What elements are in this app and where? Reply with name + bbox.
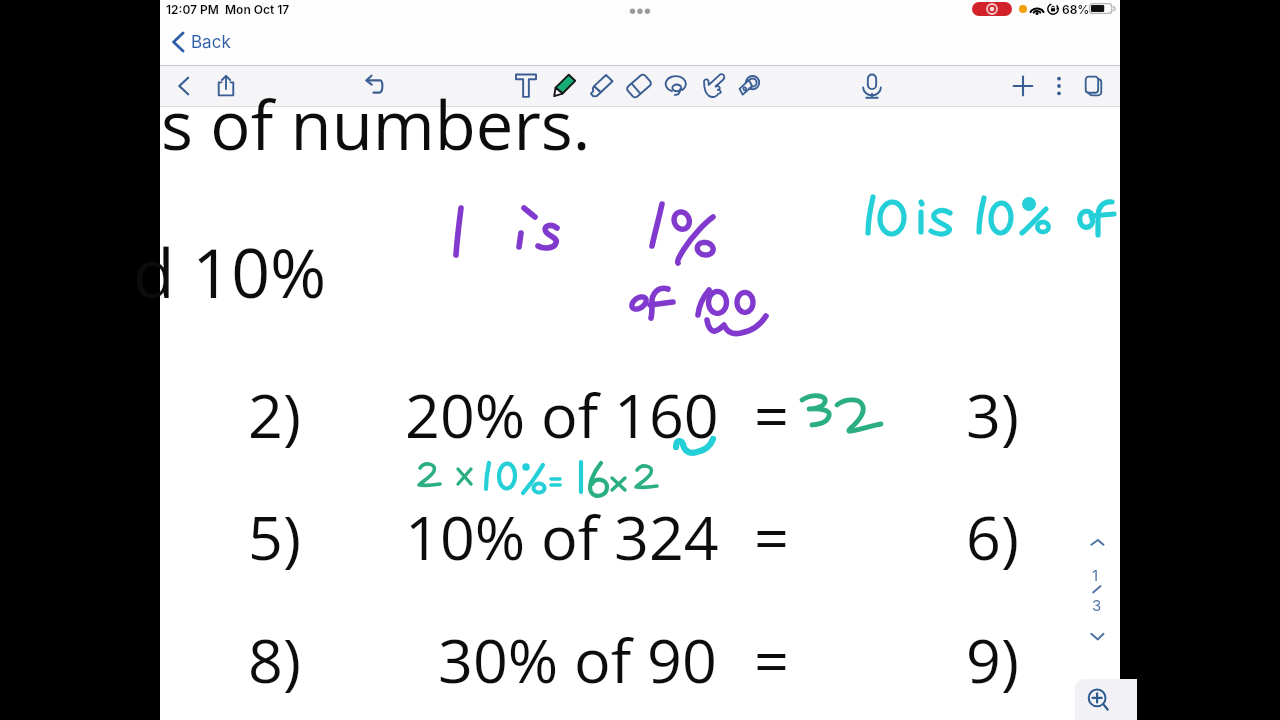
button[interactable]: Record audio	[856, 70, 888, 102]
staticText: 3	[1092, 596, 1102, 614]
staticText: 20% of 160	[405, 373, 719, 456]
staticText: 2)	[248, 373, 301, 456]
staticText: Mon Oct 17	[225, 2, 290, 17]
staticText: 10% of 324	[405, 495, 719, 578]
button[interactable]: Pen tool	[548, 70, 580, 102]
staticText: 8)	[248, 618, 301, 701]
staticText: =	[754, 373, 789, 456]
button[interactable]: Next page	[1085, 627, 1111, 647]
button[interactable]: Laser pointer	[734, 70, 766, 102]
staticText: 68%	[1062, 2, 1090, 17]
button[interactable]: Add	[1007, 70, 1039, 102]
button[interactable]: Eraser	[623, 70, 655, 102]
button[interactable]: Back	[168, 70, 200, 102]
button[interactable]: Undo	[359, 70, 391, 102]
other: Recording	[972, 2, 1012, 16]
button[interactable]: Pages	[1078, 70, 1110, 102]
button[interactable]: Highlighter	[586, 70, 618, 102]
staticText: 6)	[966, 495, 1019, 578]
staticText: 30% of 90	[438, 618, 717, 701]
button[interactable]: Hand tool	[697, 70, 729, 102]
staticText: 1	[1092, 566, 1099, 584]
button[interactable]: Lasso	[660, 70, 692, 102]
button[interactable]: Previous page	[1085, 533, 1111, 553]
button[interactable]: More	[1043, 70, 1075, 102]
button[interactable]: Text tool	[510, 70, 542, 102]
staticText: =	[754, 495, 789, 578]
staticText: =	[754, 618, 789, 701]
staticText: 5)	[248, 495, 301, 578]
staticText: 3)	[966, 373, 1019, 456]
button[interactable]: Zoom in	[1075, 679, 1137, 720]
button[interactable]: Back	[166, 28, 237, 56]
staticText: s of numbers.	[161, 78, 591, 169]
button[interactable]: Share	[210, 70, 242, 102]
staticText: 12:07 PM	[166, 2, 219, 17]
staticText: Back	[191, 32, 231, 53]
staticText: 9)	[966, 618, 1019, 701]
staticText: d 10%	[133, 225, 327, 318]
